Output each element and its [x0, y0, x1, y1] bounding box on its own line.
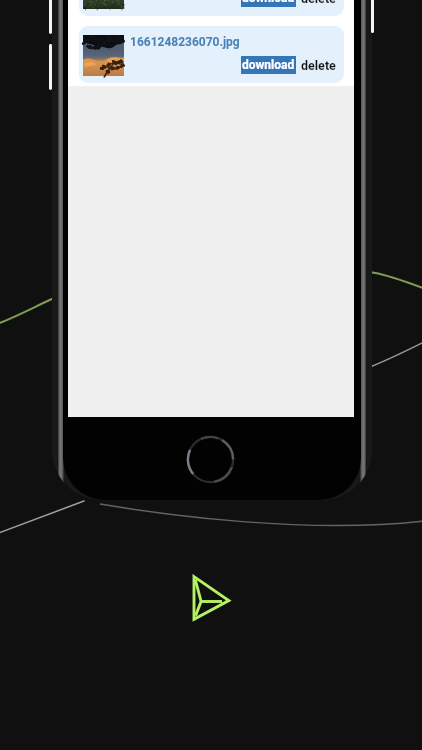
staticText: download	[242, 58, 295, 72]
button[interactable]: 1661248236070.jpg	[79, 0, 344, 16]
button[interactable]: Volume down	[49, 44, 52, 90]
button[interactable]: delete	[301, 58, 336, 73]
staticText: 1661248236070.jpg	[130, 35, 240, 49]
staticText: download	[242, 0, 295, 5]
staticText: delete	[301, 58, 336, 73]
button[interactable]: 1661248236070.jpg	[79, 26, 344, 83]
staticText: delete	[301, 0, 336, 6]
button[interactable]: download	[242, 58, 295, 72]
button[interactable]: Power	[371, 0, 374, 33]
button[interactable]: Play logo	[188, 570, 234, 626]
button[interactable]: download	[242, 0, 295, 5]
button[interactable]: Volume up	[49, 0, 52, 34]
button[interactable]: Home	[186, 435, 235, 484]
button[interactable]: delete	[301, 0, 336, 6]
